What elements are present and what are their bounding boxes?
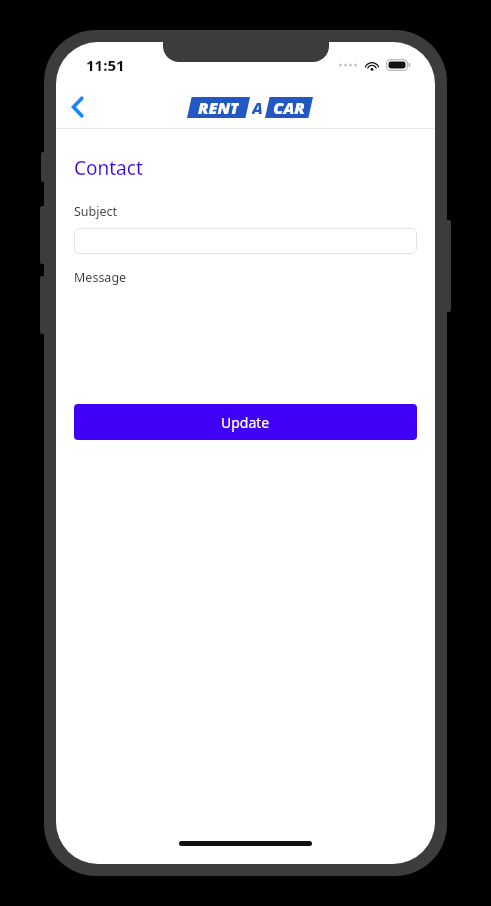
button[interactable]: Update [74,404,417,440]
staticText: Contact [74,155,143,181]
staticText: A [252,97,263,118]
staticText: 11:51 [86,55,125,75]
staticText: RENT [198,97,239,118]
staticText: CAR [273,97,305,118]
button[interactable]: Subject input [74,228,417,254]
button[interactable]: Rent A Car home [187,97,313,118]
button[interactable]: Back [56,86,100,128]
staticText: Message [74,269,127,286]
staticText: Subject [74,203,118,220]
staticText: Update [221,413,270,432]
